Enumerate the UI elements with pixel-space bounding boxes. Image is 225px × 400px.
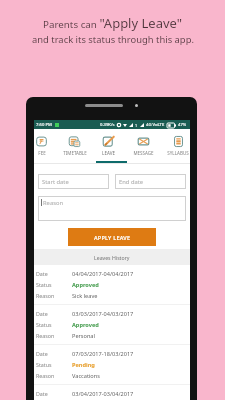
button[interactable]: End date (119, 174, 186, 189)
staticText: Pending (72, 361, 95, 369)
staticText: 04/04/2017-04/04/2017 (72, 270, 134, 278)
other: TIMETABLE (69, 136, 80, 147)
button[interactable]: FEE (34, 129, 58, 162)
button[interactable]: Date (34, 385, 190, 400)
button[interactable]: Date (34, 265, 190, 305)
staticText: End date (119, 178, 144, 186)
staticText: TIMETABLE (63, 150, 87, 156)
staticText: Date (36, 350, 48, 357)
button[interactable]: TIMETABLE (58, 129, 91, 162)
staticText: Date (36, 390, 48, 397)
staticText: 03/03/2017-04/03/2017 (72, 310, 134, 318)
staticText: Personal (72, 332, 95, 340)
button[interactable]: Start date (42, 174, 109, 189)
staticText: Reason (36, 292, 55, 299)
staticText: Status (36, 281, 52, 288)
staticText: Vaccations (72, 372, 100, 380)
staticText: Status (36, 321, 52, 328)
button[interactable]: LEAVE (91, 129, 126, 162)
staticText: APPLY LEAVE (94, 234, 131, 241)
staticText: Approved (72, 321, 99, 329)
staticText: Start date (42, 178, 69, 186)
staticText: Approved (72, 281, 99, 289)
staticText: Date (36, 310, 48, 317)
staticText: Reason (43, 199, 63, 207)
other: FEE (36, 136, 47, 147)
staticText: 03/04/2017-03/04/2017 (72, 390, 134, 398)
button[interactable]: SYLLABUS (160, 129, 190, 162)
button[interactable]: APPLY LEAVE (68, 228, 156, 246)
staticText: Leaves History (94, 254, 130, 261)
other: LEAVE (103, 136, 114, 147)
staticText: 7:50 PM (36, 122, 52, 128)
staticText: and track its status through this app. (32, 33, 194, 46)
staticText: 1 (135, 123, 138, 128)
other: SYLLABUS (173, 136, 184, 147)
button[interactable]: Date (34, 305, 190, 345)
staticText: 4G VoLTE (146, 122, 165, 128)
button[interactable]: Reason (41, 199, 186, 221)
staticText: Sick leave (72, 292, 98, 300)
staticText: Status (36, 361, 52, 368)
staticText: 07/03/2017-18/03/2017 (72, 350, 134, 358)
other: MESSAGE (138, 136, 149, 147)
staticText: Parents can "Apply Leave" (43, 14, 183, 32)
staticText: Date (36, 270, 48, 277)
staticText: SYLLABUS (167, 150, 189, 156)
staticText: Reason (36, 332, 55, 339)
staticText: 0.39K/s (100, 122, 115, 128)
staticText: MESSAGE (133, 150, 154, 156)
staticText: 47% (178, 122, 187, 128)
staticText: Reason (36, 372, 55, 379)
staticText: FEE (38, 150, 46, 156)
button[interactable]: Date (34, 345, 190, 385)
button[interactable]: MESSAGE (126, 129, 160, 162)
staticText: LEAVE (102, 150, 115, 156)
